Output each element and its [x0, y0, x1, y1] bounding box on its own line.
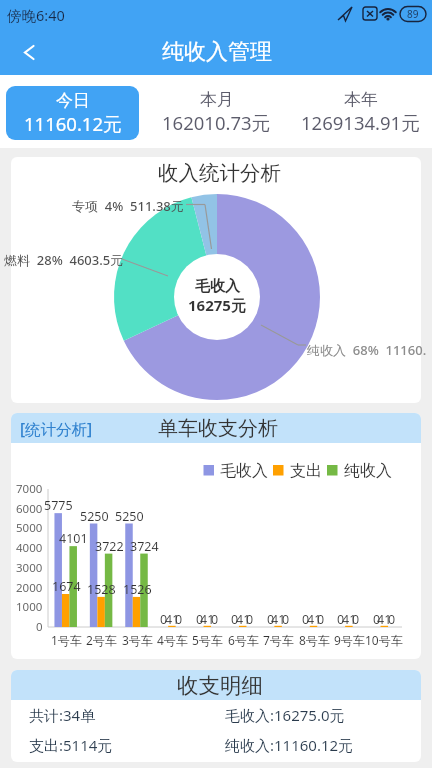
button[interactable]: 今日: [6, 86, 139, 140]
staticText: 单车收支分析: [158, 416, 278, 441]
staticText: 2000: [16, 580, 43, 596]
staticText: 0: [388, 611, 396, 628]
staticText: 5775: [44, 497, 73, 514]
staticText: 毛收入:16275.0元: [225, 705, 345, 725]
staticText: 162010.73元: [162, 110, 271, 135]
staticText: 89: [407, 7, 419, 21]
staticText: 燃料 28% 4603.5元: [4, 251, 124, 269]
staticText: 0: [317, 611, 325, 628]
staticText: 41: [342, 611, 357, 628]
staticText: 4号车: [157, 632, 188, 648]
staticText: 0: [211, 611, 219, 628]
staticText: 纯收入 68% 11160.: [307, 341, 427, 359]
staticText: 0: [302, 611, 310, 628]
staticText: 41: [377, 611, 392, 628]
staticText: 41: [165, 611, 180, 628]
staticText: 41: [236, 611, 251, 628]
staticText: 0: [337, 611, 345, 628]
staticText: 毛收入: [220, 461, 268, 481]
staticText: 纯收入管理: [162, 38, 272, 66]
staticText: 41: [271, 611, 286, 628]
staticText: 支出: [290, 461, 322, 481]
button[interactable]: [0, 28, 56, 75]
staticText: 本月: [200, 89, 234, 110]
staticText: 3号车: [122, 632, 153, 648]
staticText: 9号车: [334, 632, 365, 648]
button[interactable]: 本月: [144, 75, 288, 148]
staticText: 1269134.91元: [301, 110, 420, 135]
staticText: 7000: [16, 481, 43, 497]
staticText: 11160.12元: [24, 111, 122, 136]
staticText: 5250: [80, 508, 109, 525]
staticText: 傍晚6:40: [7, 5, 65, 25]
staticText: 7号车: [263, 632, 294, 648]
staticText: 收入统计分析: [158, 160, 281, 186]
staticText: 0: [267, 611, 275, 628]
staticText: 3722: [95, 538, 124, 555]
staticText: 6号车: [228, 632, 259, 648]
staticText: 0: [231, 611, 239, 628]
staticText: 纯收入: [344, 461, 392, 481]
staticText: 41: [200, 611, 215, 628]
staticText: 5000: [16, 520, 43, 536]
staticText: 0: [196, 611, 204, 628]
staticText: 5250: [115, 508, 144, 525]
staticText: 0: [246, 611, 254, 628]
staticText: 0: [175, 611, 183, 628]
button[interactable]: 本年: [288, 75, 432, 148]
staticText: 4101: [59, 530, 88, 547]
staticText: 16275元: [188, 295, 246, 315]
staticText: 收支明细: [177, 672, 263, 699]
staticText: 1528: [87, 581, 116, 598]
staticText: 0: [282, 611, 290, 628]
staticText: 3724: [130, 538, 159, 555]
staticText: 3000: [16, 560, 43, 576]
staticText: 1号车: [51, 632, 82, 648]
staticText: 41: [307, 611, 322, 628]
staticText: 8号车: [299, 632, 330, 648]
staticText: 1674: [52, 578, 81, 595]
staticText: 1526: [123, 581, 152, 598]
staticText: 4000: [16, 540, 43, 556]
staticText: 2号车: [86, 632, 117, 648]
staticText: 1000: [16, 599, 43, 615]
staticText: 纯收入:11160.12元: [225, 735, 354, 755]
staticText: [统计分析]: [20, 418, 93, 439]
staticText: 今日: [56, 90, 90, 111]
staticText: 10号车: [365, 632, 403, 648]
staticText: 0: [373, 611, 381, 628]
staticText: 0: [352, 611, 360, 628]
staticText: 5号车: [192, 632, 223, 648]
staticText: 0: [160, 611, 168, 628]
staticText: 6000: [16, 501, 43, 517]
staticText: 本年: [344, 89, 378, 110]
staticText: 0: [36, 619, 43, 635]
staticText: 专项 4% 511.38元: [72, 197, 184, 215]
staticText: 毛收入: [195, 277, 240, 296]
staticText: 共计:34单: [29, 705, 96, 725]
staticText: 支出:5114元: [29, 735, 113, 755]
